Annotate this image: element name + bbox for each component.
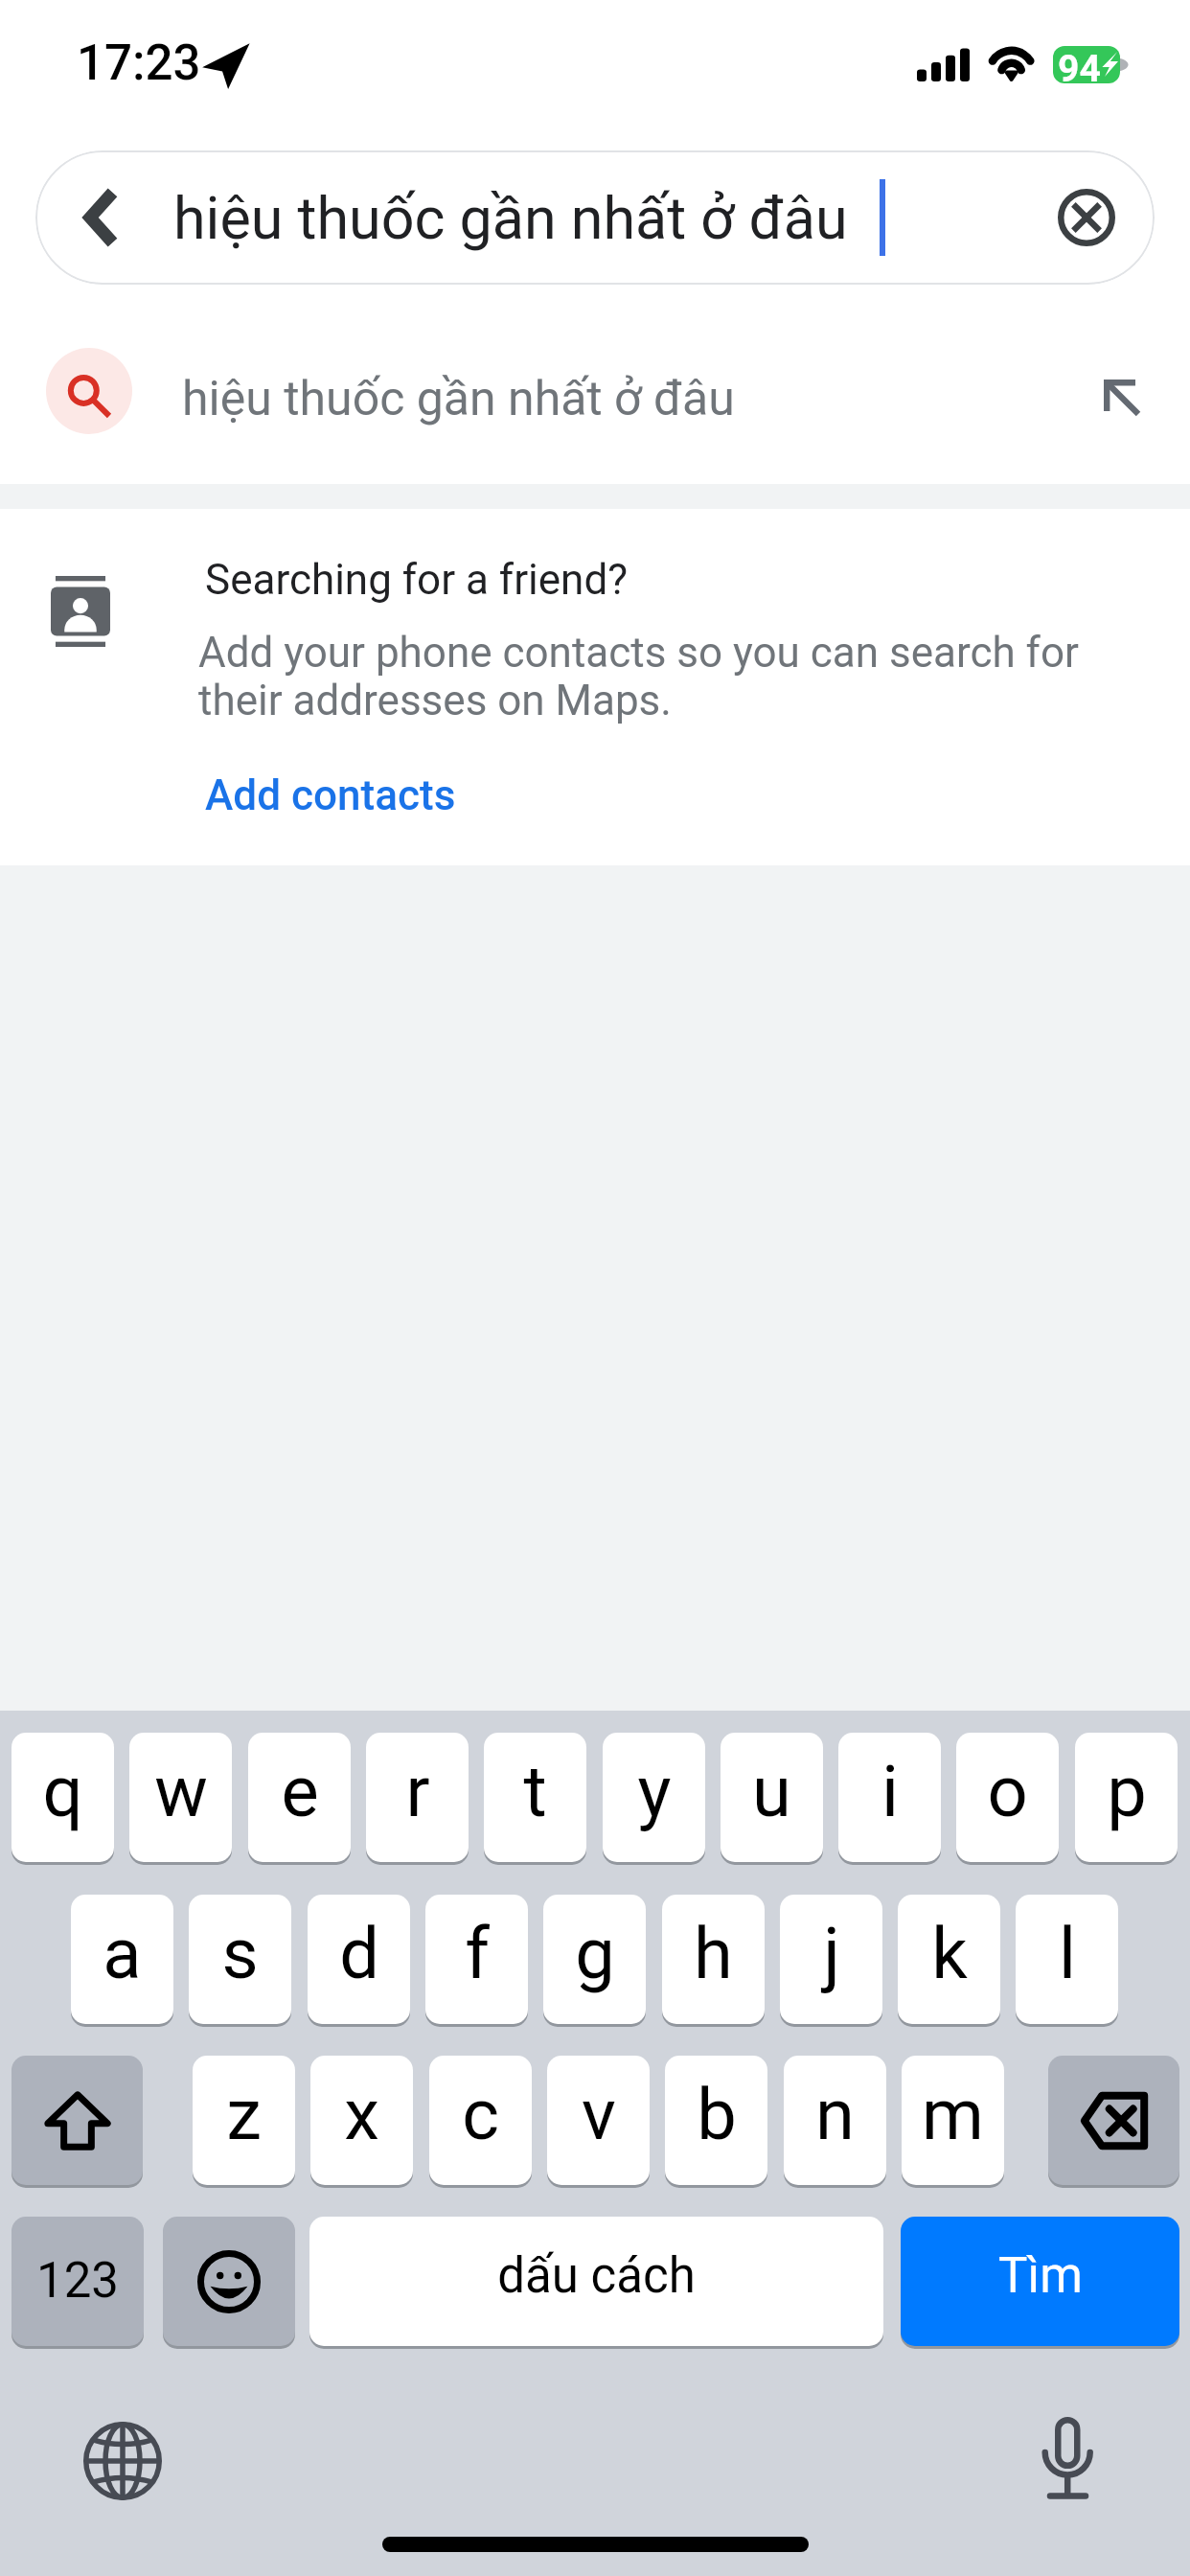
button[interactable]: d: [308, 1895, 410, 2024]
button[interactable]: Use this suggestion: [1075, 348, 1161, 434]
staticText: p: [1107, 1750, 1147, 1833]
staticText: j: [823, 1912, 840, 1995]
button[interactable]: b: [665, 2056, 767, 2185]
button[interactable]: Change keyboard language: [80, 2419, 165, 2503]
button[interactable]: w: [129, 1733, 232, 1862]
button[interactable]: Back: [35, 150, 1155, 285]
button[interactable]: s: [189, 1895, 291, 2024]
staticText: Tìm: [998, 2247, 1083, 2305]
button[interactable]: y: [603, 1733, 705, 1862]
staticText: z: [226, 2073, 262, 2156]
button[interactable]: 123: [11, 2217, 144, 2346]
button[interactable]: u: [721, 1733, 823, 1862]
staticText: Add contacts: [205, 770, 456, 820]
staticText: i: [881, 1750, 899, 1833]
staticText: g: [575, 1912, 615, 1995]
button[interactable]: Voice input: [1029, 2407, 1108, 2505]
button[interactable]: i: [838, 1733, 941, 1862]
button[interactable]: Shift: [11, 2056, 143, 2185]
staticText: s: [221, 1912, 259, 1995]
staticText: l: [1059, 1912, 1076, 1995]
button[interactable]: dấu cách: [309, 2217, 883, 2346]
staticText: r: [405, 1750, 430, 1833]
staticText: e: [281, 1750, 319, 1833]
button[interactable]: Back: [35, 150, 168, 285]
button[interactable]: e: [248, 1733, 351, 1862]
button[interactable]: k: [898, 1895, 1000, 2024]
staticText: v: [582, 2073, 616, 2156]
staticText: Searching for a friend?: [205, 555, 628, 605]
staticText: d: [339, 1912, 379, 1995]
button[interactable]: h: [662, 1895, 765, 2024]
button[interactable]: Tìm: [901, 2217, 1179, 2346]
staticText: Add your phone contacts so you can searc…: [198, 628, 1079, 724]
staticText: q: [42, 1750, 83, 1833]
button[interactable]: o: [956, 1733, 1059, 1862]
button[interactable]: r: [366, 1733, 469, 1862]
button[interactable]: Add contacts: [205, 770, 456, 820]
button[interactable]: m: [902, 2056, 1004, 2185]
staticText: w: [154, 1750, 208, 1833]
staticText: 94: [1058, 47, 1101, 91]
staticText: 17:23: [77, 34, 201, 92]
button[interactable]: a: [71, 1895, 173, 2024]
button[interactable]: n: [784, 2056, 886, 2185]
button[interactable]: x: [310, 2056, 413, 2185]
button[interactable]: l: [1016, 1895, 1118, 2024]
staticText: hiệu thuốc gần nhất ở đâu: [173, 184, 848, 252]
button[interactable]: Emoji: [163, 2217, 295, 2346]
button[interactable]: hiệu thuốc gần nhất ở đâu: [0, 307, 1190, 484]
button[interactable]: c: [429, 2056, 532, 2185]
staticText: x: [344, 2073, 379, 2156]
staticText: dấu cách: [497, 2247, 696, 2305]
button[interactable]: j: [780, 1895, 882, 2024]
button[interactable]: Clear search: [1019, 150, 1154, 285]
staticText: f: [465, 1912, 490, 1995]
staticText: h: [694, 1912, 733, 1995]
staticText: n: [815, 2073, 855, 2156]
staticText: t: [523, 1750, 547, 1833]
staticText: u: [752, 1750, 791, 1833]
staticText: m: [922, 2073, 984, 2156]
staticText: k: [931, 1912, 968, 1995]
staticText: y: [637, 1750, 672, 1833]
button[interactable]: v: [547, 2056, 650, 2185]
button[interactable]: p: [1075, 1733, 1178, 1862]
button[interactable]: t: [484, 1733, 586, 1862]
staticText: hiệu thuốc gần nhất ở đâu: [182, 371, 735, 427]
staticText: b: [697, 2073, 737, 2156]
button[interactable]: Backspace: [1048, 2056, 1179, 2185]
button[interactable]: g: [543, 1895, 646, 2024]
button[interactable]: q: [11, 1733, 114, 1862]
staticText: a: [103, 1912, 142, 1995]
button[interactable]: f: [425, 1895, 528, 2024]
staticText: 123: [36, 2252, 119, 2310]
button[interactable]: z: [193, 2056, 295, 2185]
staticText: o: [987, 1750, 1028, 1833]
button[interactable]: Searching for a friend?: [0, 509, 1190, 865]
staticText: c: [462, 2073, 499, 2156]
